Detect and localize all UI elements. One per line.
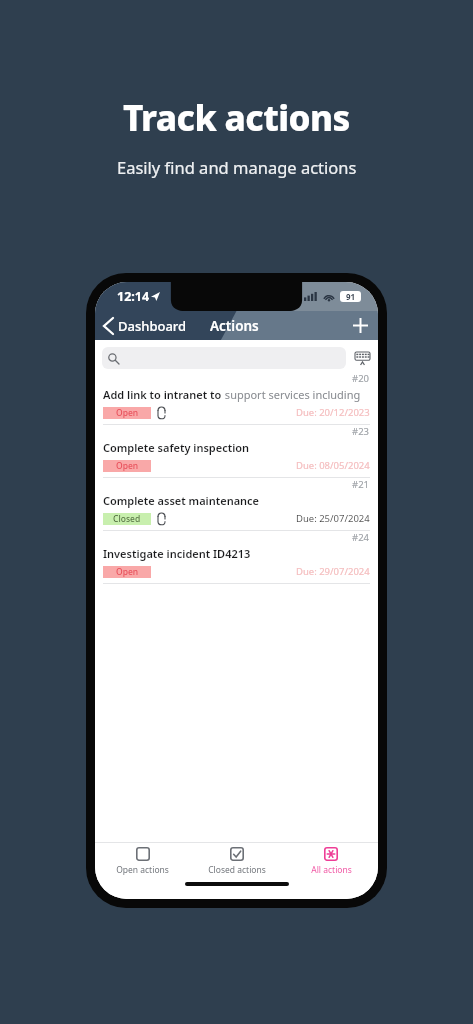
button[interactable] xyxy=(102,347,346,369)
button[interactable]: Dashboard xyxy=(95,311,195,340)
staticText: #20 xyxy=(352,372,370,385)
staticText: Actions xyxy=(210,317,259,335)
button[interactable]: #23 xyxy=(95,425,378,478)
staticText: #23 xyxy=(352,425,370,438)
button[interactable]: Hide keyboard xyxy=(352,349,373,368)
staticText: Due: 29/07/2024 xyxy=(296,565,370,578)
staticText: Closed actions xyxy=(208,864,266,876)
staticText: Open xyxy=(116,566,139,578)
staticText: Due: 08/05/2024 xyxy=(296,459,370,472)
staticText: Due: 25/07/2024 xyxy=(296,512,370,525)
staticText: All actions xyxy=(311,864,352,876)
staticText: Open xyxy=(116,407,139,419)
button[interactable]: #21 xyxy=(95,478,378,531)
staticText: Open actions xyxy=(116,864,169,876)
button[interactable]: All actions xyxy=(284,843,378,877)
button[interactable]: #24 xyxy=(95,531,378,584)
staticText: support services including B… xyxy=(222,387,378,402)
staticText: Investigate incident ID4213 xyxy=(103,546,251,561)
staticText: 12:14 xyxy=(117,288,150,305)
staticText: #21 xyxy=(352,478,370,491)
button[interactable]: Closed actions xyxy=(190,843,284,877)
staticText: Dashboard xyxy=(118,317,187,335)
staticText: Track actions xyxy=(123,94,350,142)
button[interactable]: Add action xyxy=(343,311,378,340)
staticText: Closed xyxy=(113,513,141,525)
staticText: #24 xyxy=(352,531,370,544)
staticText: Complete asset maintenance xyxy=(103,493,260,508)
button[interactable]: Open actions xyxy=(95,843,190,877)
staticText: Easily find and manage actions xyxy=(117,156,357,178)
staticText: Open xyxy=(116,460,139,472)
button[interactable]: #20 xyxy=(95,372,378,425)
staticText: 91 xyxy=(346,291,356,302)
staticText: Add link to intranet to xyxy=(103,387,222,402)
staticText: Complete safety inspection xyxy=(103,440,250,455)
staticText: Due: 20/12/2023 xyxy=(296,406,370,419)
